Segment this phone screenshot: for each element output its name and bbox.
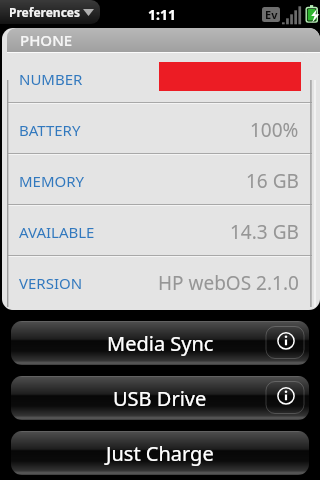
staticText: Just Charge: [106, 440, 214, 467]
staticText: BATTERY: [19, 120, 81, 140]
button[interactable]: BATTERY: [8, 104, 312, 155]
button[interactable]: Info: [265, 376, 305, 420]
staticText: VERSION: [19, 273, 83, 293]
button[interactable]: AVAILABLE: [8, 206, 312, 257]
staticText: Ev: [265, 7, 278, 22]
staticText: Media Sync: [107, 330, 214, 357]
staticText: NUMBER: [19, 69, 83, 89]
staticText: 16 GB: [246, 168, 299, 194]
staticText: HP webOS 2.1.0: [158, 270, 299, 296]
staticText: 1:11: [148, 5, 176, 24]
button[interactable]: Info: [265, 321, 305, 365]
staticText: AVAILABLE: [19, 222, 95, 242]
button[interactable]: Just Charge: [11, 431, 309, 475]
button[interactable]: VERSION: [8, 257, 312, 308]
button[interactable]: Preferences: [0, 0, 100, 24]
staticText: USB Drive: [113, 385, 207, 412]
staticText: 100%: [250, 117, 299, 143]
staticText: Preferences: [9, 4, 81, 20]
staticText: PHONE: [20, 30, 73, 50]
button[interactable]: Media Sync: [11, 321, 309, 365]
staticText: 14.3 GB: [230, 219, 299, 245]
button[interactable]: MEMORY: [8, 155, 312, 206]
button[interactable]: NUMBER: [8, 53, 312, 104]
staticText: MEMORY: [19, 171, 85, 191]
button[interactable]: USB Drive: [11, 376, 309, 420]
